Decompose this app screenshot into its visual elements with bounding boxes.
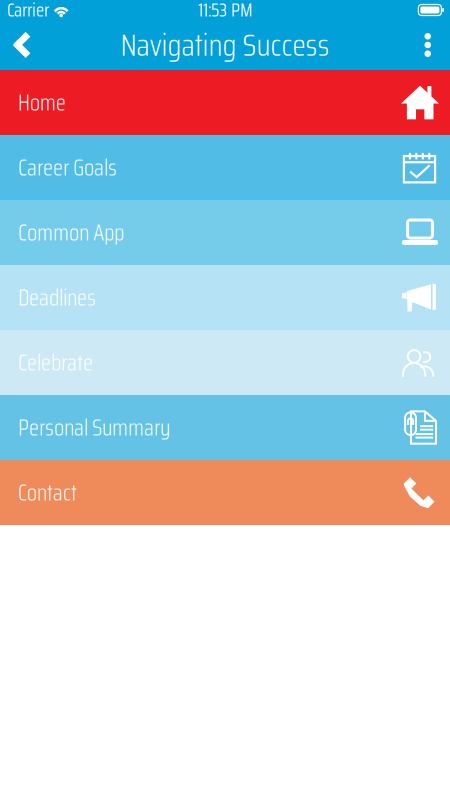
button[interactable]: Common App — [0, 200, 450, 265]
button[interactable]: Career Goals — [0, 135, 450, 200]
staticText: Personal Summary — [18, 410, 170, 445]
button[interactable]: Personal Summary — [0, 395, 450, 460]
staticText: Common App — [18, 215, 124, 250]
button[interactable]: More options — [408, 20, 450, 70]
button[interactable]: Deadlines — [0, 265, 450, 330]
staticText: Deadlines — [18, 280, 96, 315]
button[interactable]: Home — [0, 70, 450, 135]
button[interactable]: Celebrate — [0, 330, 450, 395]
staticText: 11:53 PM — [198, 0, 252, 25]
button[interactable]: Contact — [0, 460, 450, 525]
staticText: Career Goals — [18, 150, 117, 185]
staticText: Navigating Success — [120, 21, 329, 69]
staticText: Contact — [18, 475, 77, 510]
staticText: Celebrate — [18, 345, 93, 380]
staticText: Carrier — [7, 0, 49, 25]
staticText: Home — [18, 85, 66, 120]
button[interactable]: Back — [0, 20, 47, 70]
